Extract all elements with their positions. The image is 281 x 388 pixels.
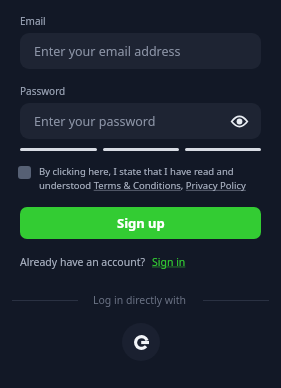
button[interactable]: Sign up	[20, 207, 261, 239]
staticText: Sign in	[152, 255, 186, 269]
button[interactable]: Sign in with Google	[122, 323, 160, 361]
staticText: Password	[20, 84, 66, 98]
staticText: Already have an account?	[20, 255, 146, 269]
staticText: Enter your password	[34, 113, 156, 130]
button[interactable]: Enter your password	[20, 103, 261, 139]
button[interactable]: By clicking here, I state that I have re…	[17, 165, 264, 192]
staticText: Email	[20, 14, 46, 28]
button[interactable]: Show password	[227, 109, 251, 133]
staticText: Sign up	[117, 214, 165, 232]
button[interactable]: Enter your email address	[20, 33, 261, 69]
staticText: By clicking here, I state that I have re…	[39, 165, 264, 192]
staticText: Enter your email address	[34, 43, 181, 60]
staticText: Log in directly with	[93, 293, 187, 307]
button[interactable]: Sign in	[152, 255, 186, 269]
